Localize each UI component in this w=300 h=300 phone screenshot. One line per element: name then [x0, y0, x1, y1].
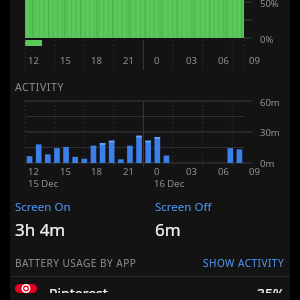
- staticText: 03: [186, 54, 197, 67]
- staticText: 03: [186, 165, 197, 178]
- staticText: 0: [154, 54, 160, 67]
- staticText: SHOW ACTIVITY: [203, 256, 285, 270]
- staticText: 60m: [260, 96, 280, 109]
- staticText: 15: [60, 54, 71, 67]
- staticText: 12: [28, 54, 39, 67]
- staticText: 35%: [257, 284, 285, 293]
- staticText: 15: [60, 165, 71, 178]
- staticText: 6m: [155, 218, 181, 241]
- button[interactable]: Pinterest: [10, 277, 290, 300]
- staticText: 18: [91, 165, 102, 178]
- staticText: 15 Dec: [28, 177, 59, 190]
- staticText: 16 Dec: [154, 177, 185, 190]
- button[interactable]: Screen On: [10, 199, 150, 241]
- staticText: 12: [28, 165, 39, 178]
- button[interactable]: Screen Off: [150, 199, 290, 241]
- staticText: 18: [91, 54, 102, 67]
- staticText: 09: [249, 54, 260, 67]
- staticText: Screen Off: [155, 199, 212, 215]
- staticText: 21: [123, 165, 134, 178]
- staticText: 09: [249, 165, 260, 178]
- staticText: 30m: [260, 126, 280, 139]
- staticText: 0: [154, 165, 160, 178]
- staticText: 06: [218, 165, 229, 178]
- staticText: Screen On: [15, 199, 71, 215]
- staticText: 21: [123, 54, 134, 67]
- staticText: 3h 4m: [15, 218, 66, 241]
- staticText: 06: [218, 54, 229, 67]
- button[interactable]: SHOW ACTIVITY: [203, 256, 285, 270]
- other: Pinterest: [15, 284, 37, 293]
- staticText: 0%: [260, 33, 274, 46]
- staticText: 0m: [260, 157, 275, 170]
- staticText: BATTERY USAGE BY APP: [15, 256, 137, 270]
- staticText: 50%: [260, 0, 279, 10]
- staticText: Pinterest: [49, 284, 108, 293]
- staticText: ACTIVITY: [15, 80, 64, 94]
